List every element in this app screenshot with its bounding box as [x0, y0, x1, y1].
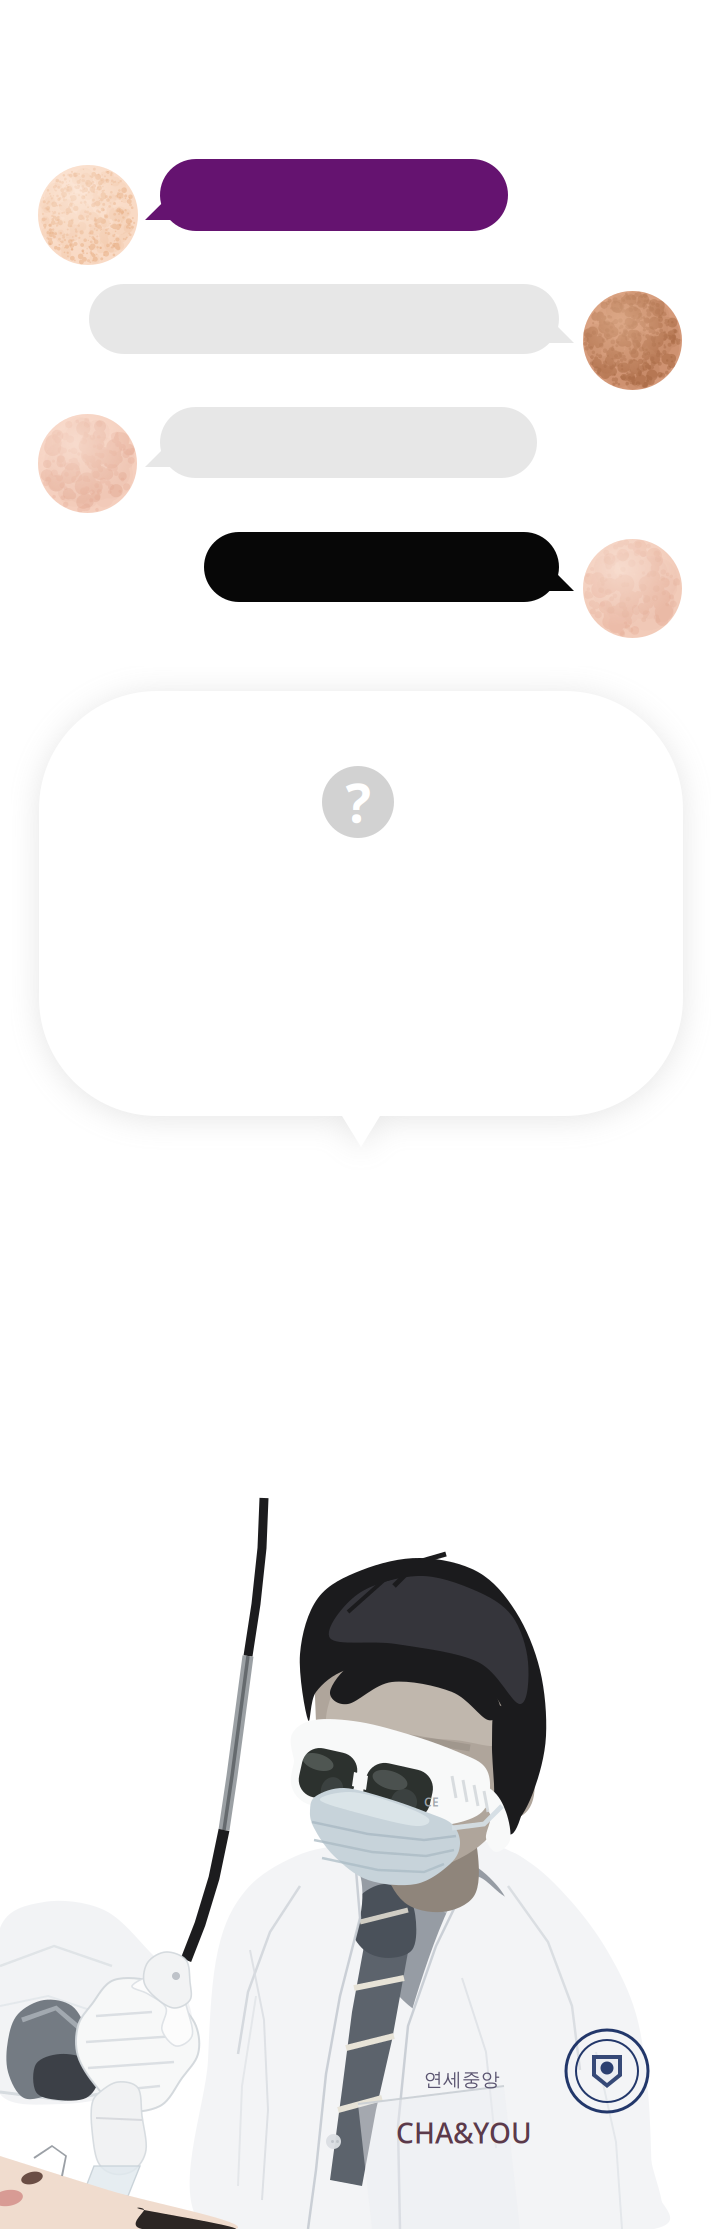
staticText: 연세중앙 — [424, 2068, 500, 2091]
button[interactable]: Reply message — [204, 532, 574, 602]
staticText: ? — [345, 767, 370, 837]
staticText: CHA&YOU — [396, 2114, 532, 2151]
button[interactable]: Message from clinic — [145, 407, 537, 478]
button[interactable]: Message from clinic — [145, 159, 508, 231]
staticText: CE — [424, 1794, 439, 1810]
button[interactable]: Reply message — [89, 284, 574, 354]
